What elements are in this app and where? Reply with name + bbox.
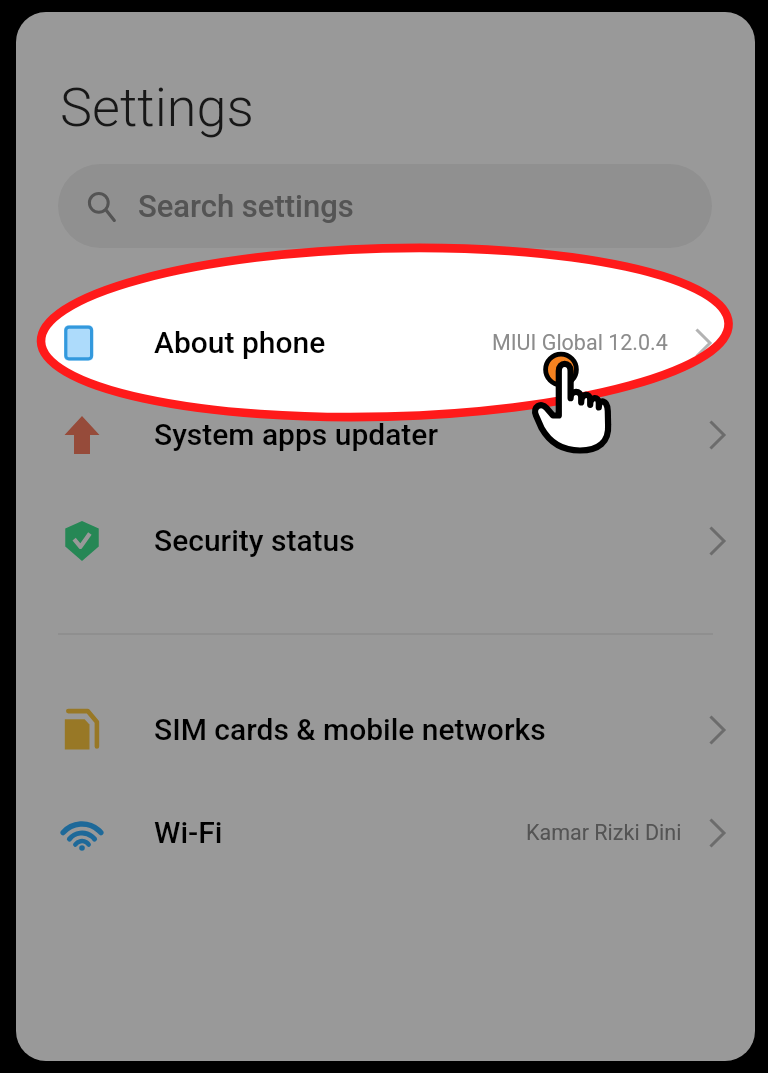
button[interactable]: Search settings (58, 164, 712, 248)
staticText: System apps updater (154, 417, 439, 452)
button[interactable]: System apps updater (16, 382, 755, 487)
staticText: About phone (154, 325, 326, 360)
staticText: Kamar Rizki Dini (526, 820, 682, 845)
staticText: MIUI Global 12.0.4 (492, 330, 668, 355)
staticText: Search settings (138, 188, 354, 224)
other: Tap About phone (0, 0, 768, 1073)
button[interactable]: SIM cards & mobile networks (16, 677, 755, 782)
staticText: SIM cards & mobile networks (154, 712, 546, 747)
staticText: Wi-Fi (154, 815, 223, 850)
staticText: Security status (154, 523, 355, 558)
button[interactable]: Wi-Fi (16, 780, 755, 885)
button[interactable]: About phone (16, 290, 755, 395)
button[interactable]: Security status (16, 488, 755, 593)
staticText: Settings (60, 76, 254, 139)
